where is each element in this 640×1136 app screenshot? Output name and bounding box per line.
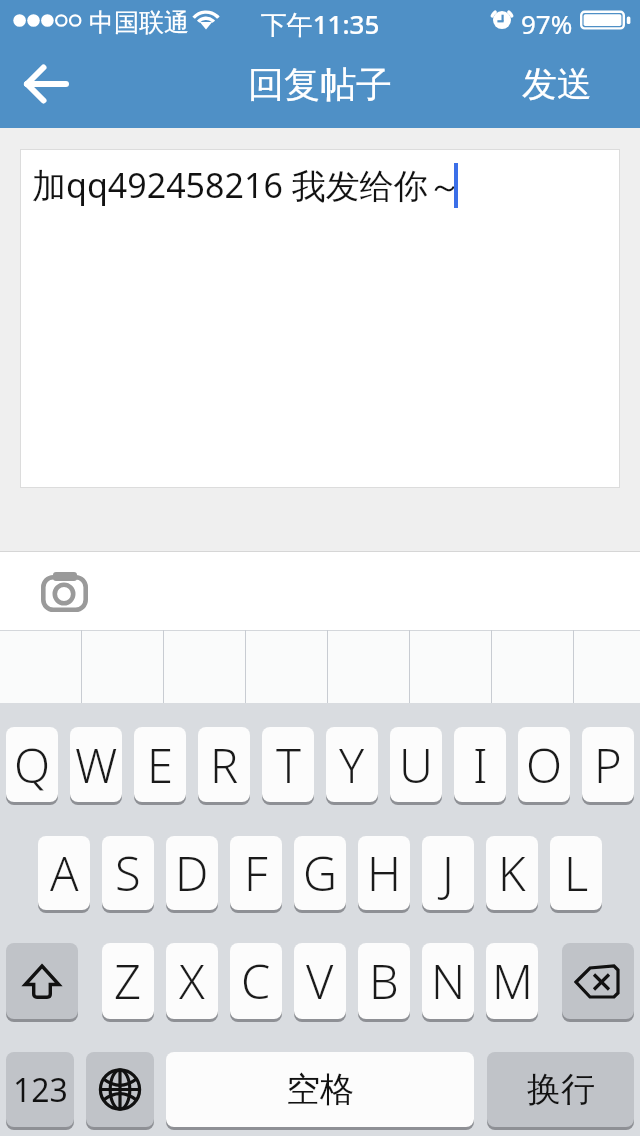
staticText: H — [367, 841, 401, 905]
button[interactable]: F — [230, 836, 282, 913]
button[interactable]: 123 — [6, 1052, 74, 1130]
button[interactable]: B — [358, 943, 410, 1022]
staticText: V — [306, 949, 334, 1013]
button[interactable]: Q — [6, 727, 58, 805]
button[interactable]: X — [166, 943, 218, 1022]
button[interactable]: R — [198, 727, 250, 805]
staticText: 加qq492458216 我发给你～ — [32, 162, 462, 208]
staticText: 回复帖子 — [248, 62, 392, 107]
staticText: 空格 — [286, 1068, 354, 1111]
button[interactable]: Backspace — [562, 943, 634, 1022]
button[interactable]: U — [390, 727, 442, 805]
staticText: P — [594, 733, 622, 797]
button[interactable] — [491, 630, 573, 703]
button[interactable]: E — [134, 727, 186, 805]
button[interactable]: 发送 — [522, 40, 592, 128]
staticText: Y — [339, 733, 365, 797]
staticText: A — [50, 841, 79, 905]
button[interactable]: K — [486, 836, 538, 913]
button[interactable]: V — [294, 943, 346, 1022]
button[interactable] — [81, 630, 163, 703]
button[interactable]: L — [550, 836, 602, 913]
button[interactable]: T — [262, 727, 314, 805]
staticText: C — [241, 949, 271, 1013]
button[interactable]: J — [422, 836, 474, 913]
button[interactable]: M — [486, 943, 538, 1022]
staticText: 发送 — [522, 62, 592, 106]
staticText: G — [303, 841, 338, 905]
staticText: B — [369, 949, 399, 1013]
staticText: F — [244, 841, 268, 905]
button[interactable]: Y — [326, 727, 378, 805]
staticText: 97% — [521, 6, 573, 41]
staticText: U — [399, 733, 433, 797]
staticText: M — [492, 949, 533, 1013]
button[interactable]: A — [38, 836, 90, 913]
button[interactable]: H — [358, 836, 410, 913]
staticText: X — [179, 949, 205, 1013]
button[interactable] — [573, 630, 640, 703]
staticText: K — [498, 841, 526, 905]
staticText: S — [115, 841, 141, 905]
button[interactable]: C — [230, 943, 282, 1022]
staticText: 换行 — [527, 1068, 595, 1111]
button[interactable] — [409, 630, 491, 703]
button[interactable] — [163, 630, 245, 703]
button[interactable]: D — [166, 836, 218, 913]
button[interactable]: O — [518, 727, 570, 805]
button[interactable]: W — [70, 727, 122, 805]
button[interactable]: 空格 — [166, 1052, 474, 1130]
staticText: E — [147, 733, 173, 797]
button[interactable] — [327, 630, 409, 703]
staticText: 123 — [13, 1068, 68, 1112]
button[interactable]: Back — [0, 40, 94, 128]
button[interactable] — [245, 630, 327, 703]
staticText: 中国联通 — [89, 7, 189, 38]
button[interactable]: 换行 — [487, 1052, 634, 1130]
staticText: N — [431, 949, 466, 1013]
staticText: Z — [114, 949, 142, 1013]
button[interactable]: I — [454, 727, 506, 805]
staticText: W — [75, 733, 118, 797]
button[interactable]: Add photo — [26, 561, 104, 619]
staticText: I — [473, 733, 488, 797]
button[interactable]: P — [582, 727, 634, 805]
button[interactable]: Z — [102, 943, 154, 1022]
staticText: T — [276, 733, 301, 797]
staticText: R — [210, 733, 239, 797]
staticText: 下午11:35 — [0, 6, 640, 42]
staticText: D — [175, 841, 209, 905]
button[interactable]: Shift — [6, 943, 78, 1022]
staticText: J — [442, 841, 454, 905]
button[interactable]: G — [294, 836, 346, 913]
button[interactable] — [0, 630, 81, 703]
button[interactable]: N — [422, 943, 474, 1022]
staticText: L — [564, 841, 589, 905]
staticText: O — [526, 733, 563, 797]
button[interactable]: S — [102, 836, 154, 913]
button[interactable]: Switch keyboard — [86, 1052, 154, 1130]
button[interactable]: 加qq492458216 我发给你～ — [20, 149, 620, 488]
staticText: Q — [14, 733, 51, 797]
